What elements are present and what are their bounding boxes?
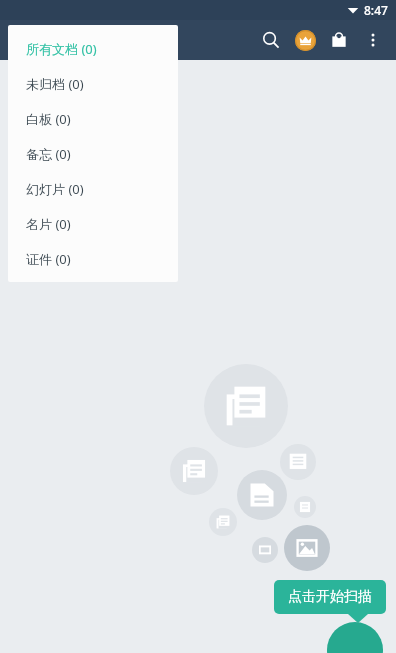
staticText: 证件 (0): [26, 250, 71, 268]
staticText: 备忘 (0): [26, 145, 71, 163]
button[interactable]: Premium: [288, 23, 322, 57]
button[interactable]: 备忘 (0): [8, 136, 178, 171]
staticText: 点击开始扫描: [288, 588, 372, 606]
staticText: 所有文档 (0): [26, 40, 97, 58]
button[interactable]: Store: [322, 23, 356, 57]
button[interactable]: 未归档 (0): [8, 66, 178, 101]
button[interactable]: Search: [254, 23, 288, 57]
staticText: 白板 (0): [26, 110, 71, 128]
button[interactable]: 白板 (0): [8, 101, 178, 136]
button[interactable]: 名片 (0): [8, 206, 178, 241]
button[interactable]: 证件 (0): [8, 241, 178, 276]
staticText: 未归档 (0): [26, 75, 84, 93]
button[interactable]: 幻灯片 (0): [8, 171, 178, 206]
staticText: 8:47: [364, 2, 388, 18]
button[interactable]: Scan: [327, 622, 383, 653]
button[interactable]: More options: [356, 23, 390, 57]
staticText: 名片 (0): [26, 215, 71, 233]
button[interactable]: 所有文档 (0): [8, 31, 178, 66]
staticText: 幻灯片 (0): [26, 180, 84, 198]
button[interactable]: 点击开始扫描: [274, 580, 386, 614]
